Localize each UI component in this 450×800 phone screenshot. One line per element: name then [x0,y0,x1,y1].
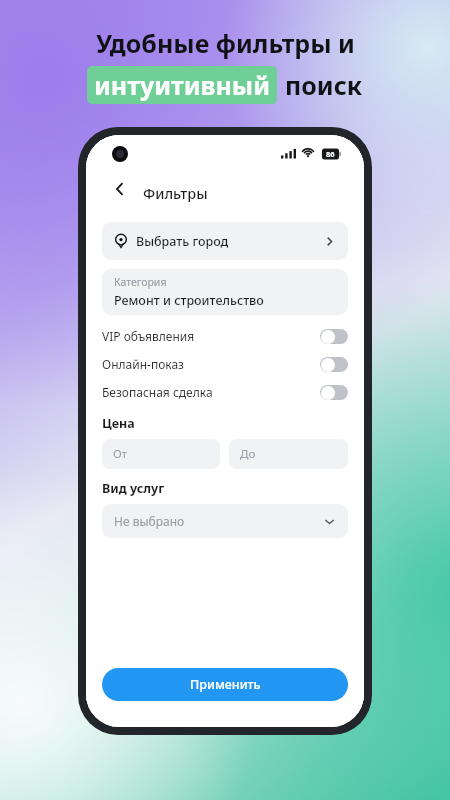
staticText: Ремонт и строительство [114,292,264,309]
button[interactable]: Безопасная сделка [102,381,348,403]
staticText: Фильтры [143,183,208,203]
staticText: Вид услуг [102,480,165,497]
button[interactable]: Выбрать город [102,222,348,260]
staticText: Применить [190,676,261,693]
staticText: Удобные фильтры и [96,26,355,60]
button[interactable]: Онлайн-показ [102,353,348,375]
button[interactable]: От [102,439,220,469]
button[interactable]: Применить [102,668,348,701]
staticText: интуитивный [94,68,270,102]
staticText: Категория [114,275,167,289]
staticText: До [240,446,256,462]
staticText: 86 [326,149,335,159]
staticText: VIP объявления [102,328,195,344]
button[interactable]: VIP объявления [102,325,348,347]
staticText: Выбрать город [136,233,229,250]
staticText: Не выбрано [114,513,185,529]
staticText: Безопасная сделка [102,384,213,400]
button[interactable]: Не выбрано [102,504,348,538]
staticText: От [113,446,128,462]
staticText: поиск [285,68,363,102]
staticText: Онлайн-показ [102,356,184,372]
button[interactable]: Назад [102,171,138,207]
staticText: Цена [102,415,135,432]
button[interactable]: Категория [102,269,348,315]
button[interactable]: До [229,439,348,469]
